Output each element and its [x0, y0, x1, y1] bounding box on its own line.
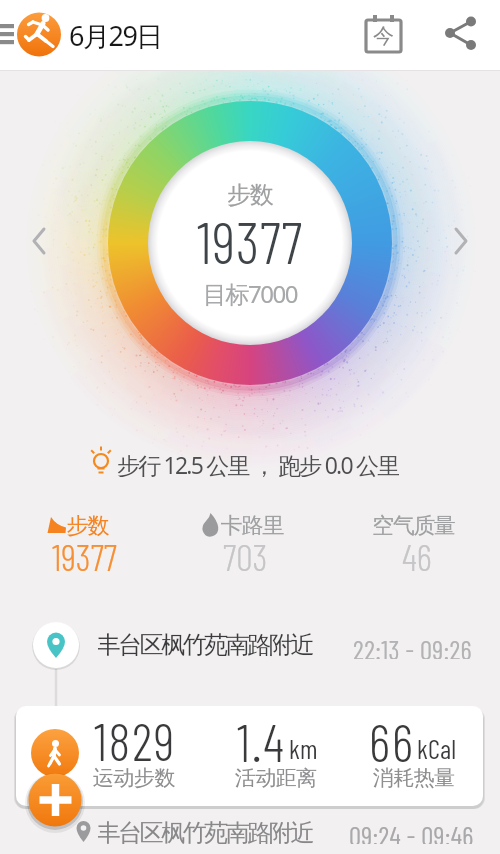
staticText: 丰台区枫竹苑南路附近 [98, 630, 313, 658]
staticText: 22:13 - 09:26 [353, 633, 472, 659]
staticText: 空气质量 [373, 512, 455, 538]
staticText: 步数 [228, 180, 273, 210]
staticText: 消耗热量 [373, 765, 455, 791]
button[interactable]: 丰台区枫竹苑南路附近 [98, 818, 313, 844]
staticText: 703 [223, 534, 268, 578]
staticText: 66 [369, 710, 415, 770]
button[interactable]: 6月29日 [69, 0, 162, 70]
staticText: 目标7000 [203, 277, 297, 310]
staticText: km [289, 732, 318, 764]
button[interactable] [440, 10, 490, 60]
staticText: 19377 [52, 534, 117, 578]
button[interactable] [16, 706, 483, 806]
staticText: 6月29日 [69, 17, 162, 54]
button[interactable]: 卡路里 [221, 512, 284, 538]
staticText: 1829 [94, 709, 177, 771]
button[interactable]: 今 [366, 21, 401, 51]
button[interactable]: 丰台区枫竹苑南路附近 [98, 630, 313, 658]
staticText: 卡路里 [221, 512, 284, 538]
staticText: 步行 12.5 公里 ， 跑步 0.0 公里 [117, 449, 399, 477]
staticText: 46 [402, 534, 432, 578]
staticText: 活动距离 [235, 765, 317, 791]
button[interactable] [28, 773, 82, 827]
staticText: 步数 [67, 512, 109, 538]
button[interactable] [22, 219, 56, 263]
button[interactable] [444, 219, 478, 263]
button[interactable] [0, 15, 26, 55]
staticText: 1.4 [237, 710, 287, 770]
staticText: 丰台区枫竹苑南路附近 [98, 818, 313, 844]
staticText: 09:24 - 09:46 [349, 819, 474, 844]
staticText: 19377 [197, 206, 303, 276]
staticText: 今 [373, 23, 394, 49]
staticText: kCal [417, 732, 457, 764]
button[interactable]: 空气质量 [373, 512, 455, 538]
staticText: 运动步数 [93, 765, 175, 791]
button[interactable]: 步数 [67, 512, 109, 538]
